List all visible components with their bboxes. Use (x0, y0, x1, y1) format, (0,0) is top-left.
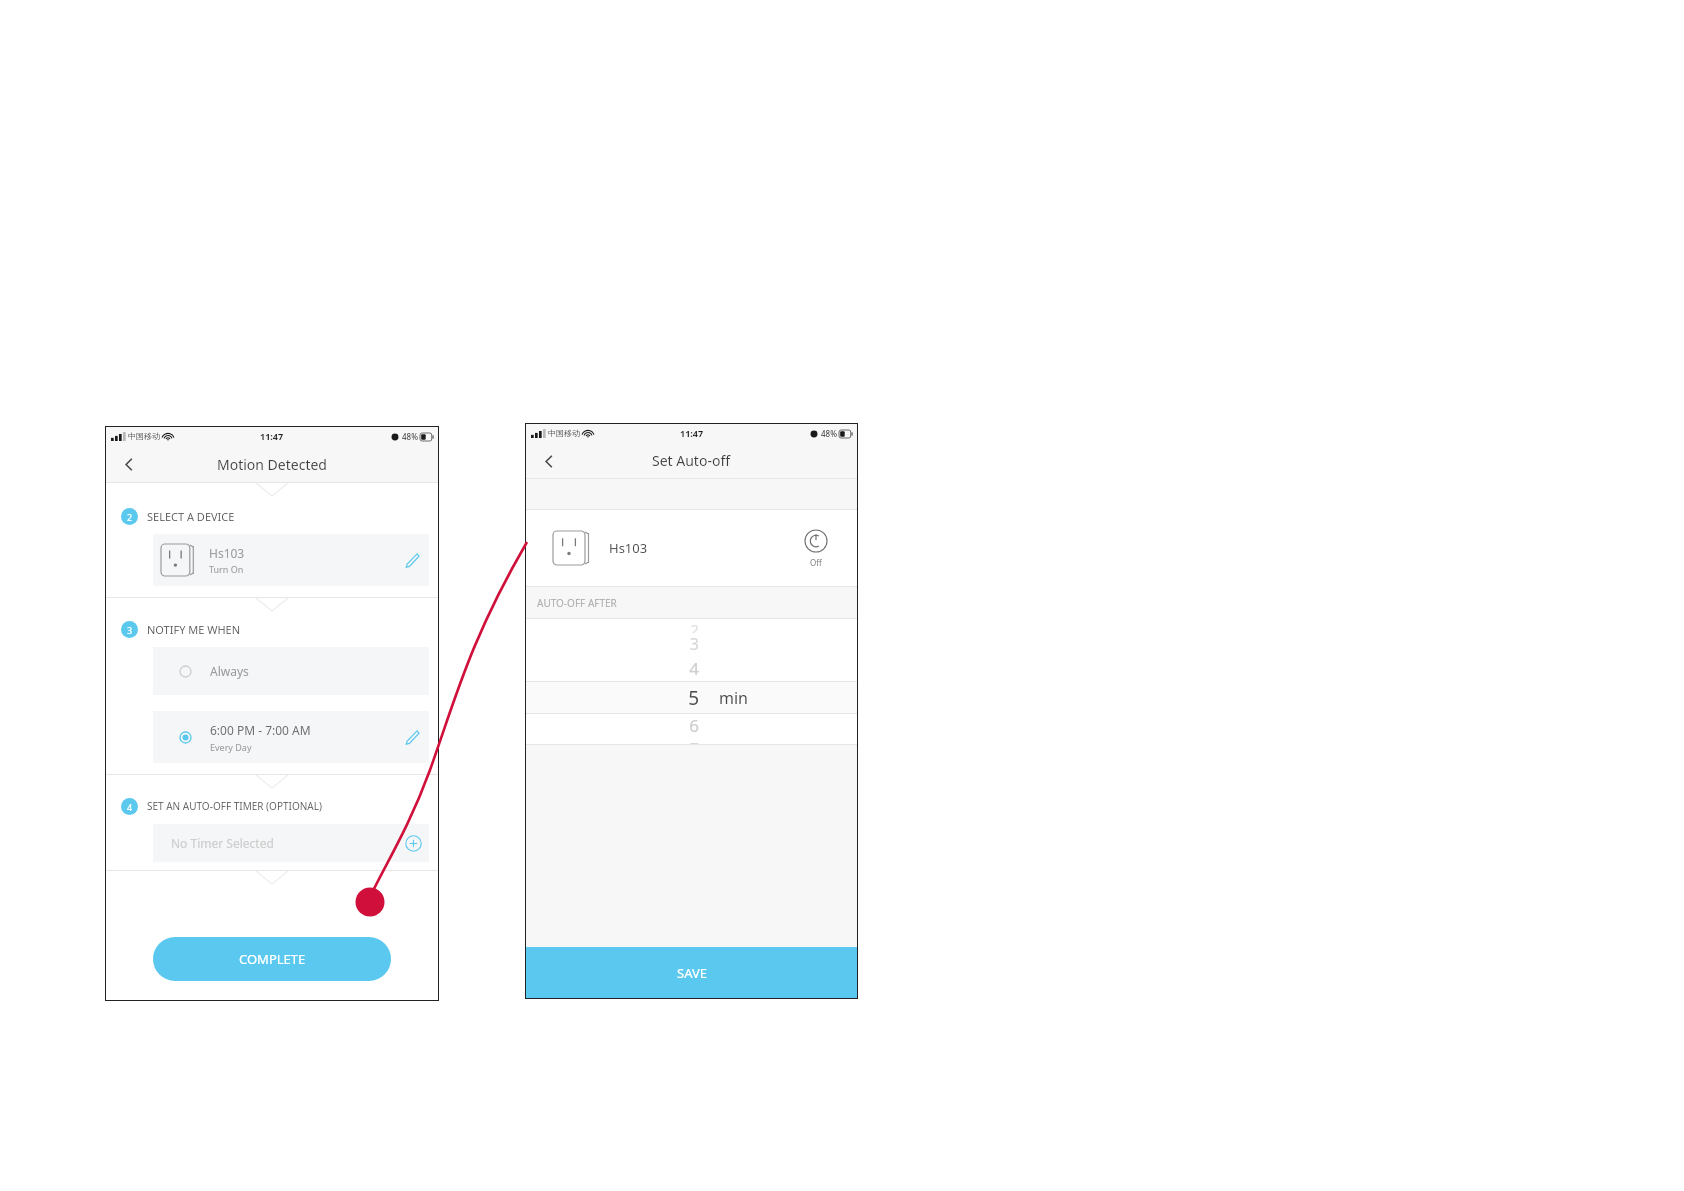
staticText: 6:00 PM - 7:00 AM (210, 722, 311, 738)
staticText: COMPLETE (239, 950, 306, 968)
staticText: Turn On (209, 563, 244, 575)
staticText: 5 (525, 685, 699, 711)
staticText: Always (210, 663, 249, 679)
staticText: Motion Detected (217, 455, 327, 474)
button[interactable]: 2 (525, 619, 858, 633)
staticText: Every Day (210, 741, 252, 753)
staticText: 4 (525, 657, 699, 680)
button[interactable]: Power toggle, Off (798, 525, 834, 572)
staticText: 2 (525, 619, 699, 633)
staticText: 7 (525, 738, 699, 744)
button[interactable]: 3 (525, 633, 858, 657)
button[interactable]: Edit device (399, 547, 425, 573)
staticText: 11:47 (260, 430, 284, 442)
staticText: 11:47 (680, 427, 704, 439)
staticText: 48% (402, 431, 418, 442)
staticText: Off (810, 557, 822, 568)
staticText: 48% (821, 428, 837, 439)
staticText: SELECT A DEVICE (147, 509, 235, 524)
button[interactable]: 5 (525, 681, 858, 714)
button[interactable]: 7 (525, 738, 858, 744)
staticText: min (719, 687, 748, 709)
staticText: 3 (127, 624, 133, 636)
staticText: 6 (525, 714, 699, 737)
staticText: 4 (127, 801, 133, 813)
staticText: NOTIFY ME WHEN (147, 622, 241, 637)
staticText: AUTO-OFF AFTER (537, 596, 617, 610)
button[interactable]: Add timer (401, 831, 425, 855)
staticText: SAVE (677, 964, 707, 982)
staticText: 中国移动 (548, 428, 580, 438)
staticText: Hs103 (609, 539, 648, 557)
staticText: 中国移动 (128, 431, 160, 441)
staticText: No Timer Selected (171, 835, 274, 851)
staticText: SET AN AUTO-OFF TIMER (OPTIONAL) (147, 799, 322, 813)
button[interactable]: COMPLETE (153, 937, 391, 981)
button[interactable]: Always (153, 647, 429, 695)
staticText: 2 (127, 511, 133, 523)
button[interactable]: SAVE (525, 947, 858, 999)
button[interactable]: 6 (525, 714, 858, 738)
staticText: Hs103 (209, 545, 245, 561)
button[interactable]: Back (535, 447, 563, 475)
button[interactable]: Back (115, 450, 143, 478)
staticText: Set Auto-off (652, 451, 731, 470)
button[interactable]: 4 (525, 657, 858, 681)
button[interactable]: No Timer Selected (153, 824, 429, 862)
button[interactable]: Edit schedule (399, 724, 425, 750)
button[interactable]: Hs103 (525, 510, 858, 586)
button[interactable]: 6:00 PM - 7:00 AM (153, 711, 429, 763)
button[interactable]: Hs103 (153, 534, 429, 586)
staticText: 3 (525, 633, 699, 655)
